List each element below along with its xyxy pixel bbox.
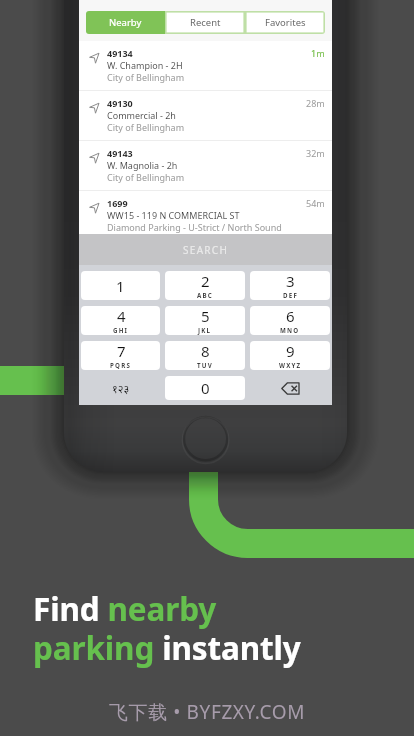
button[interactable]: 49134 bbox=[79, 41, 332, 90]
button[interactable]: Recent bbox=[165, 11, 245, 34]
button[interactable]: Backspace bbox=[250, 376, 330, 400]
button[interactable]: 5 bbox=[165, 306, 245, 335]
staticText: 1m bbox=[311, 47, 325, 59]
button[interactable]: Nearby bbox=[86, 11, 165, 34]
staticText: 1 bbox=[116, 276, 125, 296]
staticText: WXYZ bbox=[279, 361, 302, 369]
staticText: City of Bellingham bbox=[107, 71, 185, 83]
staticText: GHI bbox=[113, 326, 129, 334]
staticText: 6 bbox=[286, 306, 295, 326]
staticText: 32m bbox=[306, 147, 325, 159]
staticText: JKL bbox=[198, 326, 212, 334]
staticText: 8 bbox=[201, 341, 210, 361]
button[interactable]: 1699 bbox=[79, 191, 332, 240]
button[interactable]: 1 bbox=[81, 271, 160, 300]
staticText: 54m bbox=[306, 197, 325, 209]
staticText: 4 bbox=[117, 306, 126, 326]
staticText: City of Bellingham bbox=[107, 121, 185, 133]
button[interactable]: Favorites bbox=[245, 11, 325, 34]
staticText: TUV bbox=[197, 361, 213, 369]
button[interactable]: 49143 bbox=[79, 141, 332, 190]
button[interactable]: 2 bbox=[165, 271, 245, 300]
staticText: City of Bellingham bbox=[107, 171, 185, 183]
staticText: 49130 bbox=[107, 97, 133, 109]
staticText: 7 bbox=[117, 341, 126, 361]
staticText: 9 bbox=[286, 341, 295, 361]
staticText: 49134 bbox=[107, 47, 133, 59]
button[interactable]: 49130 bbox=[79, 91, 332, 140]
staticText: Find nearby parking instantly bbox=[33, 587, 301, 670]
staticText: Commercial - 2h bbox=[107, 109, 176, 121]
button[interactable]: 8 bbox=[165, 341, 245, 370]
staticText: PQRS bbox=[110, 361, 132, 369]
staticText: 49143 bbox=[107, 147, 133, 159]
staticText: ABC bbox=[197, 291, 213, 299]
button[interactable]: SEARCH bbox=[79, 234, 332, 265]
staticText: Nearby bbox=[109, 16, 142, 29]
staticText: 飞下载 • BYFZXY.COM bbox=[109, 699, 306, 725]
staticText: १२३ bbox=[112, 381, 130, 396]
button[interactable]: 7 bbox=[81, 341, 160, 370]
staticText: 2 bbox=[201, 271, 210, 291]
staticText: DEF bbox=[283, 291, 298, 299]
staticText: W. Champion - 2H bbox=[107, 59, 183, 71]
button[interactable]: १२३ bbox=[81, 376, 160, 400]
staticText: W. Magnolia - 2h bbox=[107, 159, 178, 171]
button[interactable]: 0 bbox=[165, 376, 245, 400]
button[interactable]: 9 bbox=[250, 341, 330, 370]
button[interactable]: 6 bbox=[250, 306, 330, 335]
button[interactable]: 4 bbox=[81, 306, 160, 335]
staticText: Favorites bbox=[265, 16, 306, 29]
staticText: Recent bbox=[190, 16, 221, 29]
staticText: Diamond Parking - U-Strict / North Sound bbox=[107, 221, 282, 233]
staticText: 5 bbox=[201, 306, 210, 326]
staticText: SEARCH bbox=[183, 243, 229, 257]
staticText: 3 bbox=[286, 271, 295, 291]
staticText: 28m bbox=[306, 97, 325, 109]
staticText: 1699 bbox=[107, 197, 128, 209]
staticText: WW15 - 119 N COMMERCIAL ST bbox=[107, 209, 240, 221]
staticText: MNO bbox=[280, 326, 300, 334]
button[interactable]: 3 bbox=[250, 271, 330, 300]
staticText: 0 bbox=[201, 378, 210, 398]
